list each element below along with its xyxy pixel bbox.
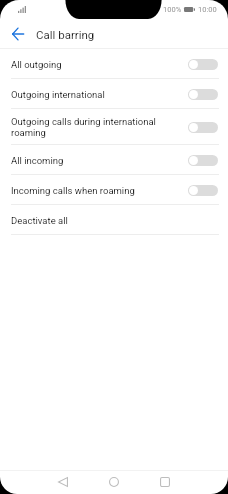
button[interactable]: Toggle	[188, 155, 218, 166]
staticText: 10:00	[198, 5, 217, 14]
button[interactable]: Incoming calls when roaming	[0, 175, 228, 205]
button[interactable]: Home	[103, 471, 125, 493]
button[interactable]: All outgoing	[0, 49, 228, 79]
button[interactable]: Deactivate all	[0, 205, 228, 235]
staticText: 100%	[163, 5, 182, 14]
staticText: Deactivate all	[11, 215, 210, 226]
button[interactable]: Back	[3, 19, 33, 49]
button[interactable]: Toggle	[188, 122, 218, 133]
button[interactable]: Recent apps	[154, 471, 176, 493]
button[interactable]: Toggle	[188, 89, 218, 100]
staticText: Outgoing international	[11, 89, 180, 100]
button[interactable]: Toggle	[188, 59, 218, 70]
button[interactable]: Outgoing international	[0, 79, 228, 109]
button[interactable]: Outgoing calls during international roam…	[0, 109, 228, 145]
staticText: All incoming	[11, 155, 180, 166]
staticText: Incoming calls when roaming	[11, 185, 180, 196]
staticText: Call barring	[36, 28, 95, 41]
staticText: Outgoing calls during international roam…	[11, 116, 180, 138]
staticText: All outgoing	[11, 59, 180, 70]
button[interactable]: Toggle	[188, 185, 218, 196]
button[interactable]: All incoming	[0, 145, 228, 175]
button[interactable]: Back	[52, 471, 74, 493]
